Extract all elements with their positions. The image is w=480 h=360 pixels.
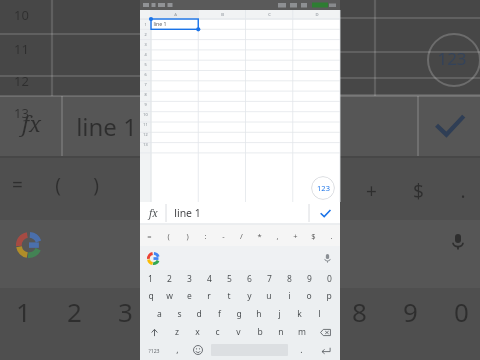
button[interactable]: j <box>269 305 289 323</box>
button[interactable]: z <box>167 323 187 341</box>
button[interactable]: m <box>291 323 312 341</box>
button[interactable]: c <box>207 323 228 341</box>
staticText: u <box>266 290 272 302</box>
staticText: p <box>326 290 332 302</box>
button[interactable]: k <box>289 305 309 323</box>
button[interactable]: 0 <box>319 271 339 287</box>
button[interactable]: Voice input <box>314 246 340 270</box>
staticText: A <box>174 12 177 18</box>
button[interactable]: / <box>232 225 250 246</box>
button[interactable]: $ <box>304 225 322 246</box>
button[interactable]: Accept <box>310 202 340 224</box>
button[interactable]: Functions <box>140 202 166 224</box>
staticText: 7 <box>144 82 147 87</box>
button[interactable]: 2 <box>160 271 179 287</box>
button[interactable]: x <box>187 323 207 341</box>
button[interactable]: line 1 <box>174 202 309 224</box>
button[interactable]: = <box>140 225 159 246</box>
button[interactable]: : <box>196 225 214 246</box>
staticText: 0 <box>327 273 332 285</box>
button[interactable]: 3 <box>179 271 199 287</box>
button[interactable]: g <box>229 305 249 323</box>
staticText: ?123 <box>148 347 160 354</box>
button[interactable]: p <box>319 287 339 305</box>
staticText: , <box>276 231 279 241</box>
staticText: = <box>12 172 23 198</box>
button[interactable]: s <box>169 305 189 323</box>
button[interactable]: 9 <box>299 271 319 287</box>
staticText: ( <box>167 231 170 241</box>
button[interactable]: y <box>239 287 259 305</box>
button[interactable]: * <box>250 225 268 246</box>
staticText: m <box>298 326 306 338</box>
staticText: y <box>247 290 252 302</box>
staticText: w <box>166 290 173 302</box>
staticText: 2 <box>167 273 172 285</box>
button[interactable]: ) <box>178 225 196 246</box>
staticText: = <box>147 231 152 241</box>
button[interactable]: - <box>214 225 232 246</box>
button[interactable]: 8 <box>279 271 299 287</box>
staticText: 1 <box>16 294 31 329</box>
staticText: line 1 <box>76 110 137 143</box>
staticText: s <box>177 308 182 320</box>
staticText: C <box>268 12 271 18</box>
button[interactable]: Shift <box>141 323 167 341</box>
staticText: 13 <box>14 104 29 122</box>
staticText: D <box>315 12 319 18</box>
staticText: a <box>157 308 162 320</box>
button[interactable]: u <box>259 287 279 305</box>
button[interactable]: w <box>160 287 179 305</box>
staticText: e <box>187 290 192 302</box>
staticText: line 1 <box>153 20 167 27</box>
staticText: fx <box>22 108 42 138</box>
staticText: 11 <box>14 40 29 58</box>
staticText: c <box>215 326 220 338</box>
button[interactable]: o <box>299 287 319 305</box>
button[interactable]: + <box>286 225 304 246</box>
button[interactable]: n <box>270 323 291 341</box>
button[interactable]: . <box>291 341 312 359</box>
button[interactable]: Switch to number keyboard <box>311 176 335 200</box>
staticText: 9 <box>144 102 147 107</box>
button[interactable]: ( <box>159 225 178 246</box>
button[interactable]: , <box>167 341 187 359</box>
staticText: 10 <box>14 6 29 24</box>
button[interactable]: e <box>179 287 199 305</box>
button[interactable]: q <box>141 287 160 305</box>
staticText: k <box>297 308 302 320</box>
button[interactable]: Enter <box>312 341 339 359</box>
staticText: b <box>257 326 263 338</box>
button[interactable]: r <box>199 287 219 305</box>
button[interactable]: Backspace <box>312 323 339 341</box>
staticText: o <box>306 290 312 302</box>
button[interactable]: Google search <box>140 246 166 270</box>
button[interactable]: 5 <box>219 271 239 287</box>
button[interactable]: v <box>228 323 249 341</box>
staticText: 8 <box>144 92 147 97</box>
button[interactable]: 6 <box>239 271 259 287</box>
staticText: 12 <box>14 72 29 90</box>
staticText: 4 <box>207 273 212 285</box>
staticText: line 1 <box>174 206 201 220</box>
button[interactable]: . <box>322 225 340 246</box>
button[interactable]: ?123 <box>141 341 167 359</box>
button[interactable]: Emoji <box>187 341 208 359</box>
staticText: r <box>207 290 211 302</box>
button[interactable]: , <box>268 225 286 246</box>
button[interactable]: 7 <box>259 271 279 287</box>
button[interactable]: i <box>279 287 299 305</box>
staticText: 5 <box>227 273 232 285</box>
button[interactable]: h <box>249 305 269 323</box>
staticText: 3 <box>118 294 133 329</box>
button[interactable]: 4 <box>199 271 219 287</box>
button[interactable]: d <box>189 305 209 323</box>
button[interactable]: 1 <box>141 271 160 287</box>
button[interactable]: f <box>209 305 229 323</box>
staticText: ) <box>186 231 189 241</box>
button[interactable]: l <box>309 305 329 323</box>
button[interactable]: a <box>150 305 169 323</box>
button[interactable]: t <box>219 287 239 305</box>
button[interactable]: b <box>249 323 270 341</box>
